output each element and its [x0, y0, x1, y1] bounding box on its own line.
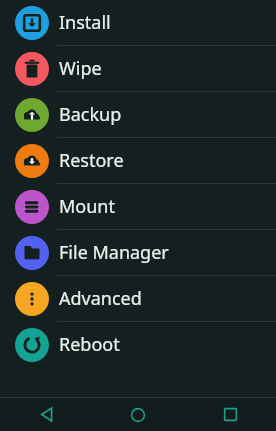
button[interactable]: Install	[0, 0, 276, 45]
staticText: Install	[59, 10, 111, 35]
button[interactable]: Advanced	[0, 276, 276, 321]
staticText: Reboot	[59, 332, 120, 357]
button[interactable]: Mount	[0, 184, 276, 229]
button[interactable]: Recent apps	[184, 398, 276, 431]
staticText: Backup	[59, 102, 122, 127]
staticText: Advanced	[59, 286, 142, 311]
button[interactable]: Back	[0, 398, 92, 431]
staticText: Restore	[59, 148, 124, 173]
button[interactable]: Reboot	[0, 322, 276, 367]
button[interactable]: Wipe	[0, 46, 276, 91]
button[interactable]: Restore	[0, 138, 276, 183]
button[interactable]: Backup	[0, 92, 276, 137]
staticText: Mount	[59, 194, 115, 219]
staticText: File Manager	[59, 240, 169, 265]
button[interactable]: File Manager	[0, 230, 276, 275]
staticText: Wipe	[59, 56, 102, 81]
button[interactable]: Home	[92, 398, 184, 431]
